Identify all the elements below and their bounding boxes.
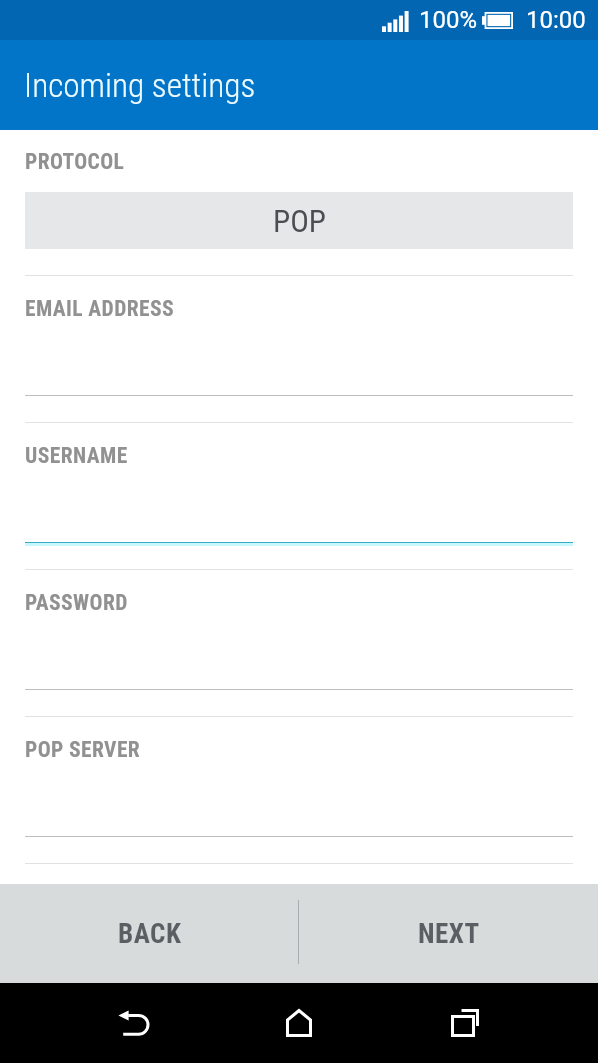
staticText: POP SERVER (25, 737, 141, 762)
button[interactable]: PASSWORD (0, 571, 598, 718)
staticText: PROTOCOL (25, 149, 125, 174)
staticText: EMAIL ADDRESS (25, 296, 174, 321)
staticText: Incoming settings (24, 66, 256, 105)
staticText: 10:00 (526, 6, 586, 34)
button[interactable]: POP SERVER (0, 718, 598, 865)
staticText: BACK (118, 918, 182, 950)
button[interactable]: BACK (0, 884, 299, 983)
staticText: PASSWORD (25, 590, 128, 615)
button[interactable]: USERNAME (0, 424, 598, 571)
staticText: POP (273, 203, 326, 239)
button[interactable]: Back (118, 1009, 147, 1037)
button[interactable]: POP (25, 192, 573, 249)
button[interactable]: Home (286, 1009, 312, 1037)
staticText: USERNAME (25, 443, 128, 468)
staticText: NEXT (418, 918, 480, 950)
staticText: 100% (419, 6, 478, 34)
button[interactable]: NEXT (299, 884, 598, 983)
button[interactable]: EMAIL ADDRESS (0, 277, 598, 424)
button[interactable]: Recent apps (451, 1009, 479, 1037)
